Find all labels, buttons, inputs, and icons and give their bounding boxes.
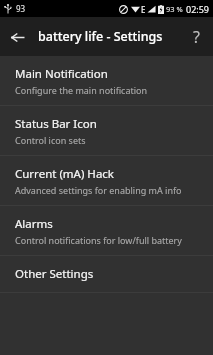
- staticText: battery life - Settings: [38, 28, 163, 45]
- button[interactable]: Main Notification: [0, 56, 213, 105]
- button[interactable]: Status Bar Icon: [0, 106, 213, 155]
- button[interactable]: Help: [181, 22, 211, 52]
- staticText: Other Settings: [15, 266, 94, 282]
- button[interactable]: Other Settings: [0, 256, 213, 292]
- staticText: ?: [193, 26, 200, 48]
- staticText: 93 %: [166, 4, 183, 14]
- staticText: Main Notification: [15, 66, 108, 82]
- staticText: Advanced settings for enabling mA info: [15, 184, 182, 196]
- staticText: Status Bar Icon: [15, 116, 97, 132]
- staticText: Control icon sets: [15, 134, 86, 146]
- button[interactable]: Navigate up: [0, 20, 34, 54]
- button[interactable]: Alarms: [0, 206, 213, 255]
- button[interactable]: Current (mA) Hack: [0, 156, 213, 205]
- staticText: 02:59: [186, 3, 210, 15]
- staticText: Control notifications for low/full batte…: [15, 234, 182, 246]
- staticText: Alarms: [15, 216, 53, 232]
- staticText: Current (mA) Hack: [15, 166, 115, 182]
- staticText: E: [141, 4, 146, 15]
- staticText: 93: [16, 3, 26, 14]
- staticText: Configure the main notification: [15, 84, 148, 96]
